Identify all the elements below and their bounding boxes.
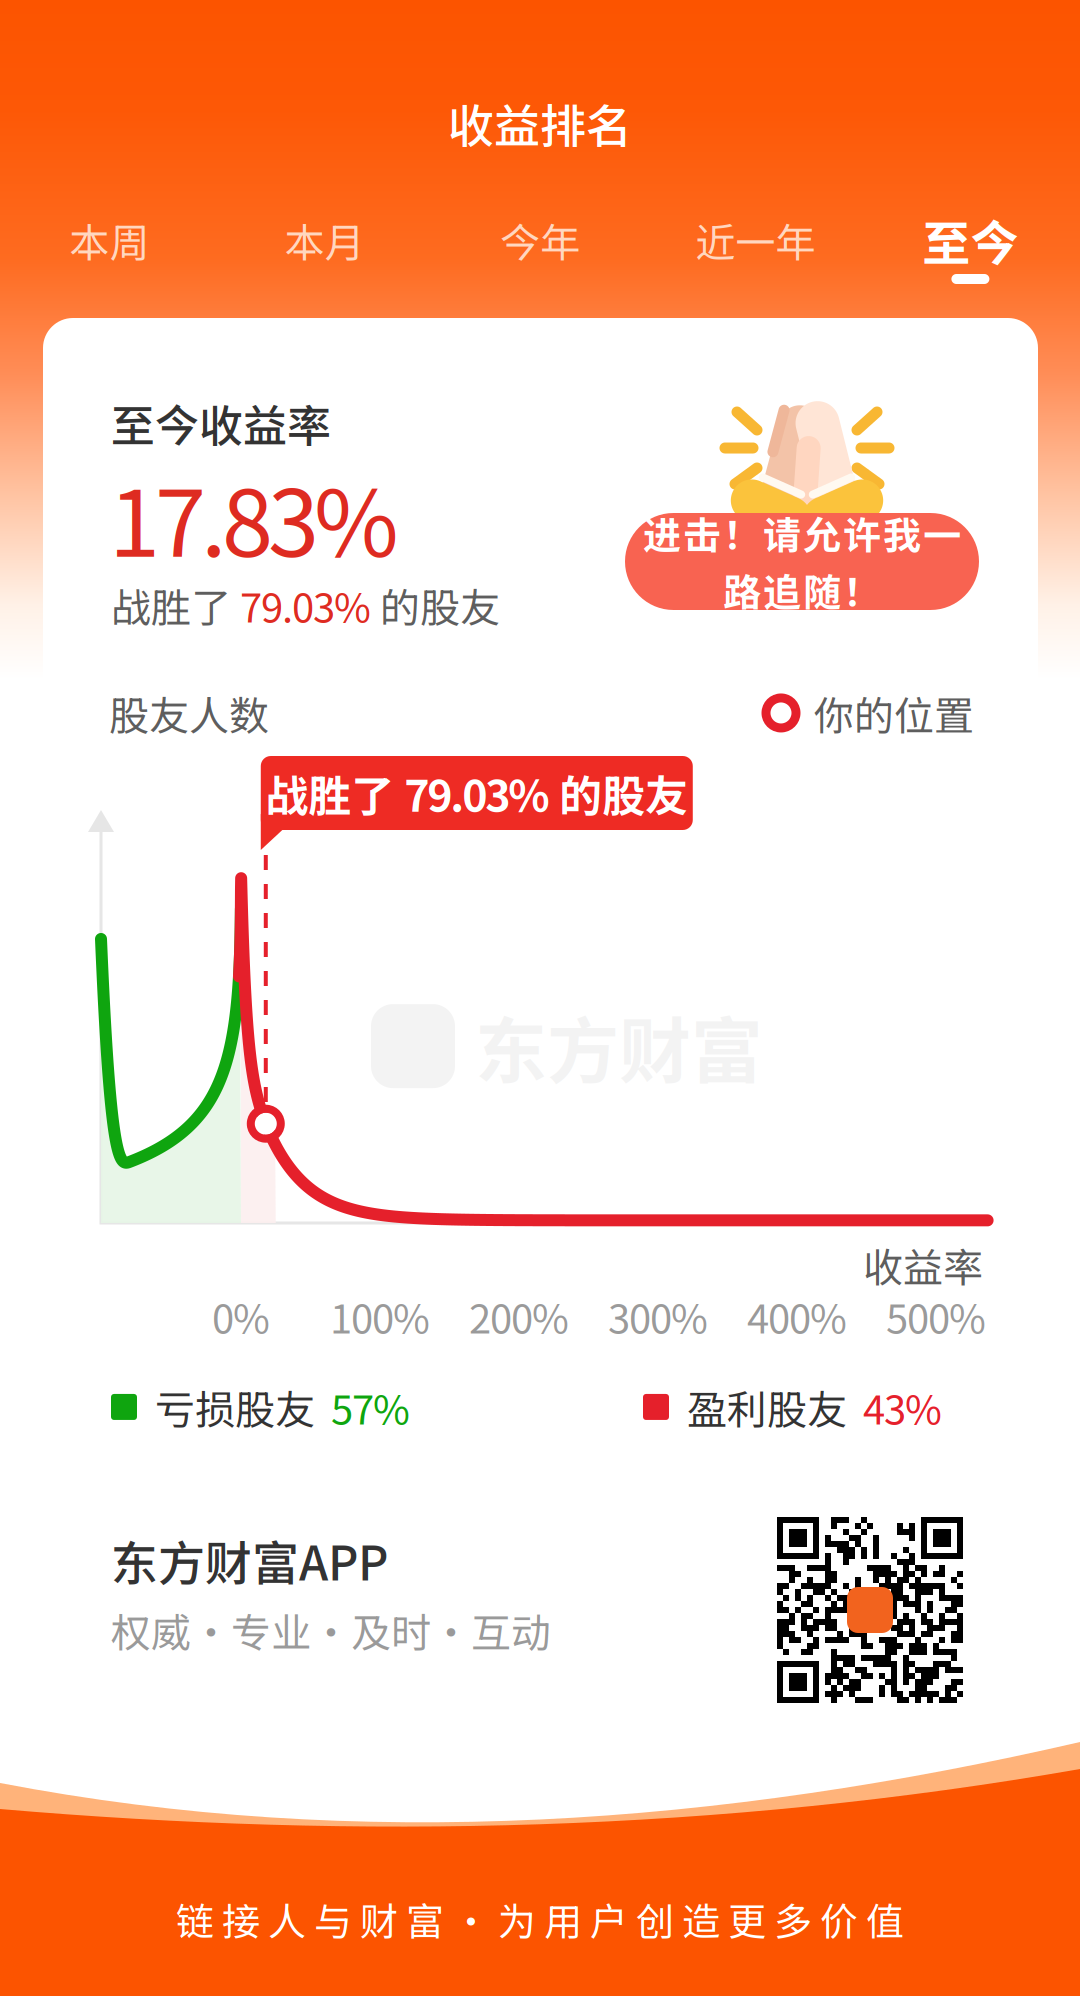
staticText: 200% — [469, 1287, 569, 1345]
staticText: 收益率 — [863, 1236, 983, 1294]
button[interactable]: 本周 — [2, 212, 217, 304]
staticText: 亏损股友 — [155, 1378, 315, 1436]
staticText: 近一年 — [695, 211, 815, 269]
staticText: 进击！请允许我一 — [643, 505, 961, 560]
staticText: 路追随！ — [723, 562, 881, 617]
button[interactable]: 今年 — [432, 212, 648, 304]
staticText: 0% — [212, 1287, 270, 1345]
button[interactable]: 近一年 — [648, 212, 863, 304]
staticText: 本周 — [70, 211, 150, 269]
staticText: 500% — [886, 1287, 986, 1345]
staticText: 79.03% — [404, 762, 549, 824]
staticText: 本月 — [285, 211, 365, 269]
staticText: 东方财富 — [475, 994, 763, 1098]
staticText: 100% — [330, 1287, 430, 1345]
staticText: 链接人与财富·为用户创造更多价值 — [176, 1891, 904, 1946]
staticText: 43% — [863, 1378, 942, 1436]
staticText: 战胜了 — [265, 762, 404, 824]
staticText: 盈利股友 — [687, 1378, 847, 1436]
staticText: 你的位置 — [814, 684, 974, 742]
button[interactable]: 本月 — [217, 212, 432, 304]
staticText: 东方财富APP — [111, 1526, 388, 1594]
staticText: 股友人数 — [109, 684, 269, 742]
staticText: 79.03% — [240, 576, 371, 634]
staticText: 战胜了 — [111, 576, 240, 634]
staticText: 17.83% — [109, 450, 399, 583]
staticText: 的股友 — [549, 762, 688, 824]
staticText: 300% — [608, 1287, 708, 1345]
staticText: 权威·专业·及时·互动 — [111, 1601, 551, 1659]
staticText: 至今 — [922, 205, 1018, 275]
staticText: 57% — [331, 1378, 410, 1436]
staticText: 收益排名 — [448, 90, 632, 156]
staticText: 今年 — [500, 211, 580, 269]
staticText: 400% — [747, 1287, 847, 1345]
staticText: 的股友 — [371, 576, 500, 634]
staticText: 至今收益率 — [111, 391, 331, 455]
button[interactable]: 至今 — [863, 212, 1078, 304]
